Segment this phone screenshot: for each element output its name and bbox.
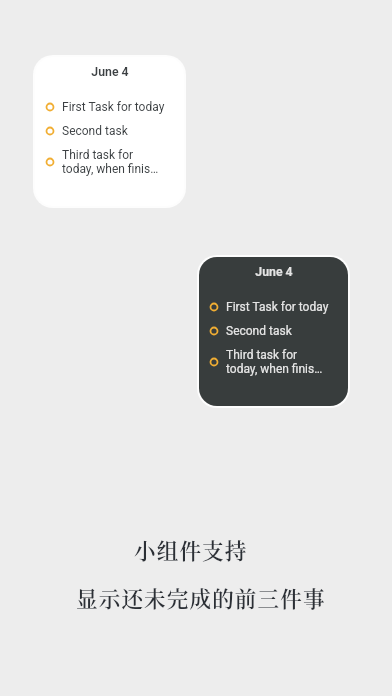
staticText: Third task for today, when finis… — [226, 348, 331, 376]
button[interactable]: June 4 — [199, 257, 348, 406]
staticText: Third task for today, when finis… — [62, 148, 167, 176]
staticText: June 4 — [91, 65, 129, 79]
button[interactable]: June 4 — [35, 57, 184, 206]
staticText: First Task for today — [226, 300, 329, 314]
staticText: June 4 — [255, 265, 293, 279]
staticText: 小组件支持 — [134, 534, 248, 565]
staticText: 显示还未完成的前三件事 — [76, 582, 326, 613]
staticText: First Task for today — [62, 100, 165, 114]
staticText: Second task — [62, 124, 128, 138]
staticText: Second task — [226, 324, 292, 338]
